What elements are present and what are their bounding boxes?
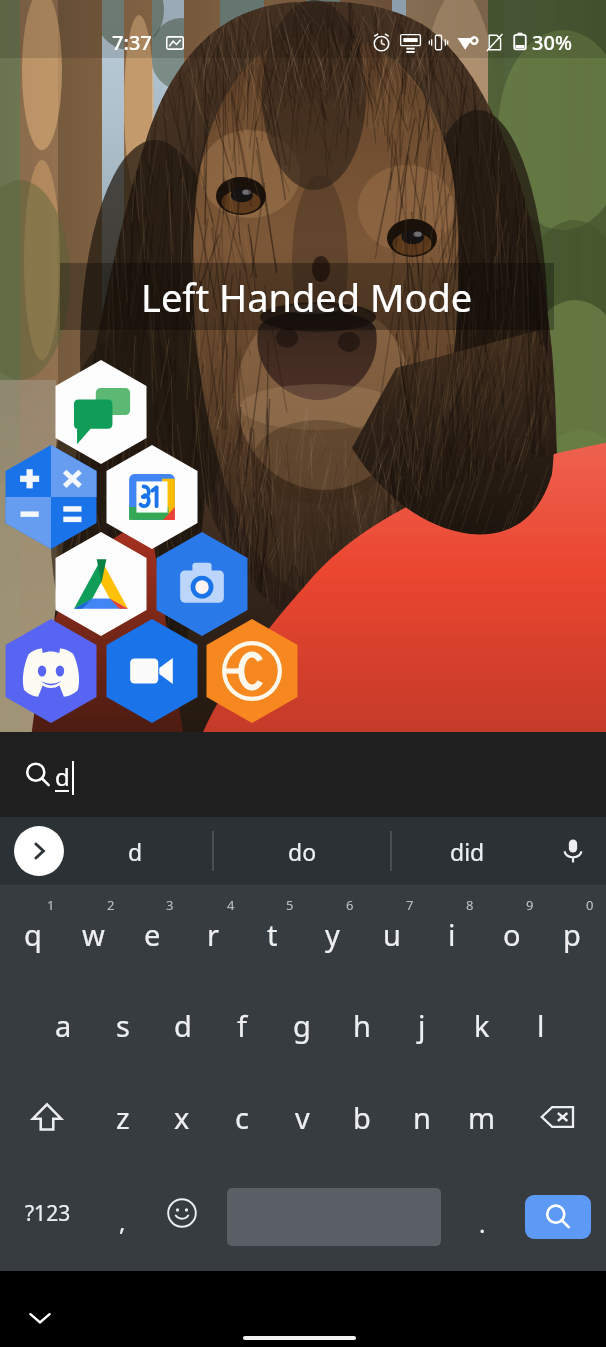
button[interactable]: Backspace <box>523 1073 591 1161</box>
button[interactable]: Hide keyboard <box>24 1302 56 1334</box>
button[interactable]: l <box>511 979 571 1071</box>
button[interactable]: g <box>272 979 332 1071</box>
button[interactable]: did <box>397 817 537 885</box>
button[interactable]: s <box>93 979 153 1071</box>
staticText: s <box>116 1006 130 1045</box>
staticText: y <box>325 915 340 954</box>
staticText: 8 <box>466 896 474 914</box>
staticText: w <box>82 915 105 954</box>
staticText: d <box>128 836 143 867</box>
button[interactable]: m <box>452 1071 512 1163</box>
staticText: , <box>119 1205 126 1238</box>
button[interactable]: r <box>183 888 243 980</box>
button[interactable]: p <box>542 888 602 980</box>
button[interactable]: v <box>272 1071 332 1163</box>
button[interactable]: Emoji <box>153 1169 211 1257</box>
staticText: t <box>267 915 278 954</box>
staticText: 9 <box>526 896 534 914</box>
staticText: b <box>353 1098 371 1137</box>
staticText: 6 <box>346 896 354 914</box>
button[interactable]: n <box>392 1071 452 1163</box>
staticText: 7 <box>406 896 414 914</box>
staticText: did <box>450 836 485 867</box>
staticText: l <box>537 1006 545 1045</box>
staticText: d <box>55 760 70 793</box>
staticText: q <box>24 915 42 954</box>
button[interactable]: d <box>153 979 213 1071</box>
staticText: 1 <box>47 896 55 914</box>
staticText: 3 <box>166 896 174 914</box>
staticText: r <box>207 915 219 954</box>
button[interactable]: j <box>392 979 452 1071</box>
staticText: 30% <box>532 29 572 56</box>
button[interactable]: o <box>482 888 542 980</box>
button[interactable]: t <box>242 888 302 980</box>
staticText: do <box>288 836 317 867</box>
button[interactable]: f <box>212 979 272 1071</box>
button[interactable]: . <box>453 1179 511 1267</box>
button[interactable]: e <box>122 888 182 980</box>
staticText: g <box>293 1006 311 1045</box>
staticText: u <box>383 915 401 954</box>
staticText: 4 <box>227 896 235 914</box>
button[interactable]: x <box>152 1071 212 1163</box>
staticText: h <box>353 1006 371 1045</box>
staticText: n <box>413 1098 431 1137</box>
button[interactable]: w <box>63 888 123 980</box>
staticText: ?123 <box>25 1199 71 1228</box>
staticText: i <box>448 915 456 954</box>
staticText: Left Handed Mode <box>141 271 473 323</box>
button[interactable]: k <box>452 979 512 1071</box>
staticText: j <box>418 1006 426 1045</box>
staticText: v <box>295 1098 310 1137</box>
staticText: 5 <box>286 896 294 914</box>
staticText: 7:37 <box>112 29 152 56</box>
staticText: m <box>468 1098 496 1137</box>
button[interactable]: a <box>33 979 93 1071</box>
button[interactable]: Shift <box>17 1073 77 1161</box>
button[interactable]: d <box>0 732 606 817</box>
button[interactable]: b <box>332 1071 392 1163</box>
button[interactable]: Search <box>525 1195 591 1239</box>
button[interactable]: c <box>212 1071 272 1163</box>
staticText: e <box>144 915 161 954</box>
button[interactable]: z <box>93 1071 153 1163</box>
button[interactable]: ?123 <box>7 1169 89 1257</box>
staticText: d <box>174 1006 192 1045</box>
staticText: a <box>55 1006 72 1045</box>
staticText: 0 <box>586 896 594 914</box>
staticText: k <box>474 1006 490 1045</box>
button[interactable]: do <box>232 817 372 885</box>
button[interactable]: Expand suggestions <box>8 817 70 885</box>
staticText: 2 <box>107 896 115 914</box>
button[interactable]: i <box>422 888 482 980</box>
staticText: . <box>479 1207 486 1240</box>
staticText: z <box>116 1098 130 1137</box>
staticText: f <box>237 1006 247 1045</box>
staticText: o <box>503 915 521 954</box>
button[interactable]: q <box>3 888 63 980</box>
button[interactable]: d <box>65 817 205 885</box>
staticText: c <box>235 1098 249 1137</box>
button[interactable]: u <box>362 888 422 980</box>
button[interactable]: y <box>302 888 362 980</box>
staticText: x <box>174 1098 190 1137</box>
button[interactable]: h <box>332 979 392 1071</box>
button[interactable]: Voice input <box>543 817 603 885</box>
staticText: p <box>563 915 581 954</box>
button[interactable]: , <box>93 1177 151 1265</box>
